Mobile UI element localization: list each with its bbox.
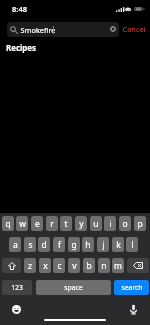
button[interactable]: l — [126, 237, 138, 252]
button[interactable]: Smokefire — [7, 22, 119, 37]
button[interactable]: Shift — [2, 258, 21, 273]
button[interactable]: s — [24, 237, 36, 252]
staticText: i — [109, 218, 112, 230]
staticText: x — [43, 260, 48, 272]
button[interactable]: o — [119, 216, 131, 231]
staticText: n — [101, 260, 107, 272]
staticText: l — [131, 239, 134, 251]
staticText: v — [72, 260, 77, 272]
staticText: t — [64, 218, 68, 230]
button[interactable]: u — [90, 216, 102, 231]
staticText: q — [5, 218, 11, 230]
staticText: 8:48 — [12, 4, 27, 14]
button[interactable]: space — [36, 280, 111, 295]
button[interactable]: c — [53, 258, 65, 273]
button[interactable]: d — [38, 237, 50, 252]
button[interactable]: 123 — [2, 280, 32, 295]
staticText: c — [57, 260, 62, 272]
staticText: y — [79, 218, 84, 230]
button[interactable]: z — [24, 258, 36, 273]
staticText: h — [85, 239, 91, 251]
button[interactable]: n — [98, 258, 110, 273]
staticText: s — [28, 239, 33, 251]
button[interactable]: j — [97, 237, 109, 252]
staticText: space — [64, 283, 83, 292]
button[interactable]: t — [60, 216, 72, 231]
staticText: 123 — [11, 283, 23, 292]
staticText: a — [13, 239, 18, 251]
staticText: m — [114, 260, 122, 272]
staticText: Cancel — [122, 24, 146, 34]
button[interactable]: f — [53, 237, 65, 252]
button[interactable]: v — [68, 258, 80, 273]
staticText: p — [137, 218, 143, 230]
button[interactable]: p — [134, 216, 146, 231]
staticText: u — [93, 218, 99, 230]
staticText: g — [71, 239, 77, 251]
button[interactable]: a — [9, 237, 21, 252]
button[interactable]: search — [114, 280, 149, 295]
button[interactable]: Voice input — [129, 304, 138, 315]
button[interactable]: h — [82, 237, 94, 252]
staticText: search — [121, 283, 143, 292]
staticText: j — [102, 239, 105, 251]
button[interactable]: m — [112, 258, 124, 273]
button[interactable]: e — [31, 216, 43, 231]
staticText: Smokefire — [20, 25, 56, 35]
button[interactable]: r — [46, 216, 58, 231]
button[interactable]: Emoji keyboard — [12, 305, 21, 314]
button[interactable]: k — [112, 237, 124, 252]
button[interactable]: g — [68, 237, 80, 252]
staticText: z — [28, 260, 32, 272]
button[interactable]: x — [39, 258, 51, 273]
button[interactable]: Clear text — [110, 26, 116, 32]
staticText: b — [86, 260, 92, 272]
button[interactable]: q — [2, 216, 14, 231]
button[interactable]: w — [16, 216, 28, 231]
button[interactable]: Cancel — [122, 24, 146, 34]
staticText: Recipes — [6, 43, 36, 54]
staticText: f — [58, 239, 61, 251]
staticText: o — [122, 218, 128, 230]
staticText: r — [50, 218, 54, 230]
button[interactable]: Backspace — [127, 258, 149, 273]
button[interactable]: i — [104, 216, 116, 231]
button[interactable]: y — [75, 216, 87, 231]
staticText: k — [116, 239, 121, 251]
button[interactable]: b — [83, 258, 95, 273]
staticText: e — [35, 218, 40, 230]
staticText: w — [19, 218, 26, 230]
staticText: d — [41, 239, 47, 251]
